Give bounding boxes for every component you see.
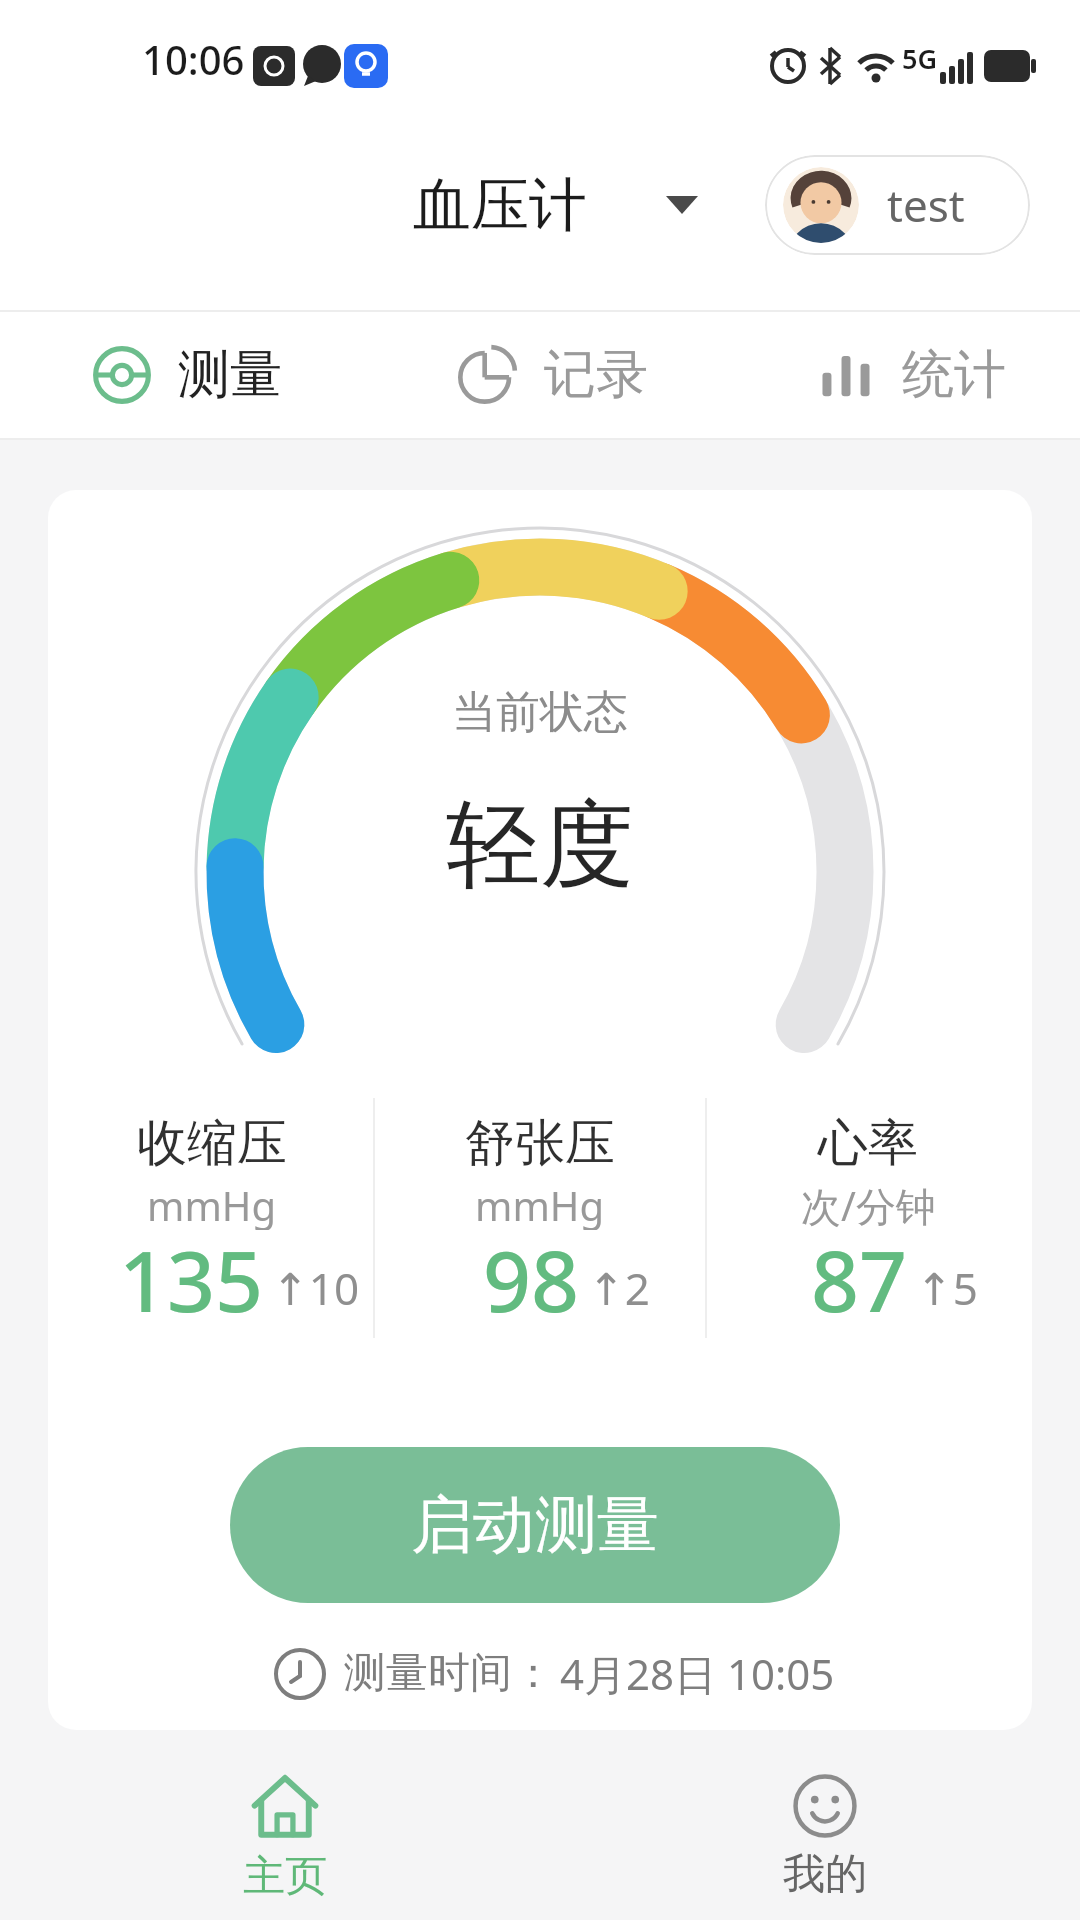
staticText: ↑5: [916, 1258, 979, 1318]
staticText: 10:06: [142, 32, 245, 86]
staticText: 98: [483, 1222, 580, 1328]
staticText: mmHg: [475, 1178, 605, 1230]
staticText: 测量时间：: [344, 1647, 554, 1700]
staticText: ↑10: [272, 1258, 360, 1318]
staticText: 血压计: [413, 169, 587, 242]
button[interactable]: test: [765, 155, 1030, 255]
button[interactable]: 统计: [806, 310, 1018, 440]
staticText: mmHg: [147, 1178, 277, 1230]
staticText: 心率: [818, 1112, 918, 1175]
staticText: 当前状态: [452, 685, 628, 740]
staticText: 次/分钟: [801, 1178, 936, 1230]
staticText: 舒张压: [465, 1112, 615, 1175]
staticText: 记录: [544, 342, 648, 408]
staticText: ↑2: [588, 1258, 651, 1318]
staticText: 4月28日 10:05: [560, 1645, 835, 1702]
staticText: 135: [119, 1222, 264, 1328]
staticText: 主页: [243, 1850, 327, 1903]
staticText: 5G: [902, 40, 938, 77]
staticText: 统计: [902, 342, 1006, 408]
staticText: 轻度: [446, 786, 634, 904]
staticText: test: [887, 175, 965, 235]
staticText: 测量: [178, 342, 282, 408]
staticText: 启动测量: [411, 1486, 659, 1564]
button[interactable]: 记录: [446, 310, 660, 440]
button[interactable]: 我的: [775, 1774, 875, 1914]
button[interactable]: 测量: [80, 310, 294, 440]
staticText: 我的: [783, 1848, 867, 1901]
staticText: 收缩压: [137, 1112, 287, 1175]
staticText: 87: [811, 1222, 908, 1328]
button[interactable]: 启动测量: [230, 1447, 840, 1603]
button[interactable]: 主页: [235, 1774, 335, 1914]
